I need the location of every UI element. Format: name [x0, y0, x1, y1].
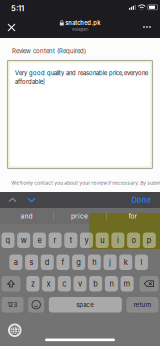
- staticText: o: [132, 236, 136, 245]
- staticText: Done: [131, 195, 150, 204]
- button[interactable]: h: [88, 254, 101, 270]
- button[interactable]: d: [41, 254, 54, 270]
- button[interactable]: g: [72, 254, 85, 270]
- button[interactable]: x: [42, 276, 55, 291]
- button[interactable]: u: [96, 232, 109, 248]
- button[interactable]: k: [119, 254, 132, 270]
- staticText: c: [62, 279, 66, 288]
- staticText: Review content (Required): [12, 47, 86, 55]
- button[interactable]: a: [9, 254, 22, 270]
- button[interactable]: j: [103, 254, 116, 270]
- button[interactable]: p: [143, 232, 156, 248]
- staticText: b: [93, 279, 98, 288]
- button[interactable]: and: [0, 208, 53, 224]
- button[interactable]: v: [73, 276, 86, 291]
- button[interactable]: r: [49, 232, 62, 248]
- button[interactable]: s: [25, 254, 38, 270]
- staticText: and: [20, 212, 32, 220]
- button[interactable]: Previous field: [6, 195, 19, 205]
- staticText: 123: [7, 301, 17, 308]
- button[interactable]: Emoji keyboard: [28, 297, 44, 312]
- staticText: f: [61, 258, 64, 267]
- button[interactable]: z: [26, 276, 39, 291]
- staticText: Very good quality and reasonable price,e…: [15, 69, 148, 85]
- button[interactable]: More options: [140, 21, 154, 33]
- button[interactable]: Shift: [1, 276, 20, 291]
- staticText: w: [21, 236, 27, 245]
- staticText: q: [5, 236, 10, 245]
- staticText: l: [140, 258, 142, 267]
- button[interactable]: y: [80, 232, 93, 248]
- button[interactable]: f: [56, 254, 69, 270]
- button[interactable]: t: [64, 232, 77, 248]
- button[interactable]: e: [33, 232, 46, 248]
- staticText: for: [128, 212, 137, 220]
- button[interactable]: w: [17, 232, 30, 248]
- staticText: r: [54, 236, 57, 245]
- button[interactable]: for: [106, 208, 160, 224]
- button[interactable]: q: [1, 232, 14, 248]
- staticText: h: [92, 258, 96, 267]
- button[interactable]: Next field: [25, 195, 38, 205]
- staticText: k: [124, 258, 128, 267]
- staticText: We'll only contact you about your review…: [11, 180, 160, 186]
- staticText: 5:11: [11, 4, 24, 13]
- button[interactable]: Close: [4, 20, 19, 35]
- staticText: v: [78, 279, 82, 288]
- button[interactable]: n: [105, 276, 118, 291]
- staticText: j: [109, 258, 111, 267]
- staticText: a: [14, 258, 18, 267]
- staticText: n: [109, 279, 113, 288]
- button[interactable]: i: [111, 232, 124, 248]
- button[interactable]: c: [58, 276, 71, 291]
- button[interactable]: Switch keyboard: [8, 323, 21, 337]
- button[interactable]: Done: [130, 195, 152, 204]
- staticText: s: [29, 258, 33, 267]
- staticText: e: [37, 236, 41, 245]
- button[interactable]: l: [135, 254, 148, 270]
- button[interactable]: space: [49, 297, 122, 312]
- button[interactable]: price: [53, 208, 106, 224]
- staticText: u: [100, 236, 104, 245]
- staticText: t: [70, 236, 72, 245]
- button[interactable]: m: [121, 276, 134, 291]
- staticText: space: [76, 301, 94, 308]
- staticText: p: [147, 236, 152, 245]
- staticText: m: [124, 279, 131, 288]
- button[interactable]: o: [127, 232, 140, 248]
- staticText: x: [47, 279, 51, 288]
- staticText: snatched.pk: [65, 19, 100, 26]
- staticText: price: [71, 212, 88, 220]
- button[interactable]: Delete: [139, 276, 158, 291]
- staticText: z: [31, 279, 35, 288]
- staticText: y: [84, 236, 88, 245]
- staticText: i: [117, 236, 119, 245]
- button[interactable]: b: [89, 276, 102, 291]
- button[interactable]: 123: [1, 297, 23, 312]
- staticText: Instagram: [72, 27, 88, 32]
- button[interactable]: return: [126, 297, 158, 312]
- staticText: return: [133, 301, 151, 308]
- staticText: g: [76, 258, 81, 267]
- staticText: d: [45, 258, 50, 267]
